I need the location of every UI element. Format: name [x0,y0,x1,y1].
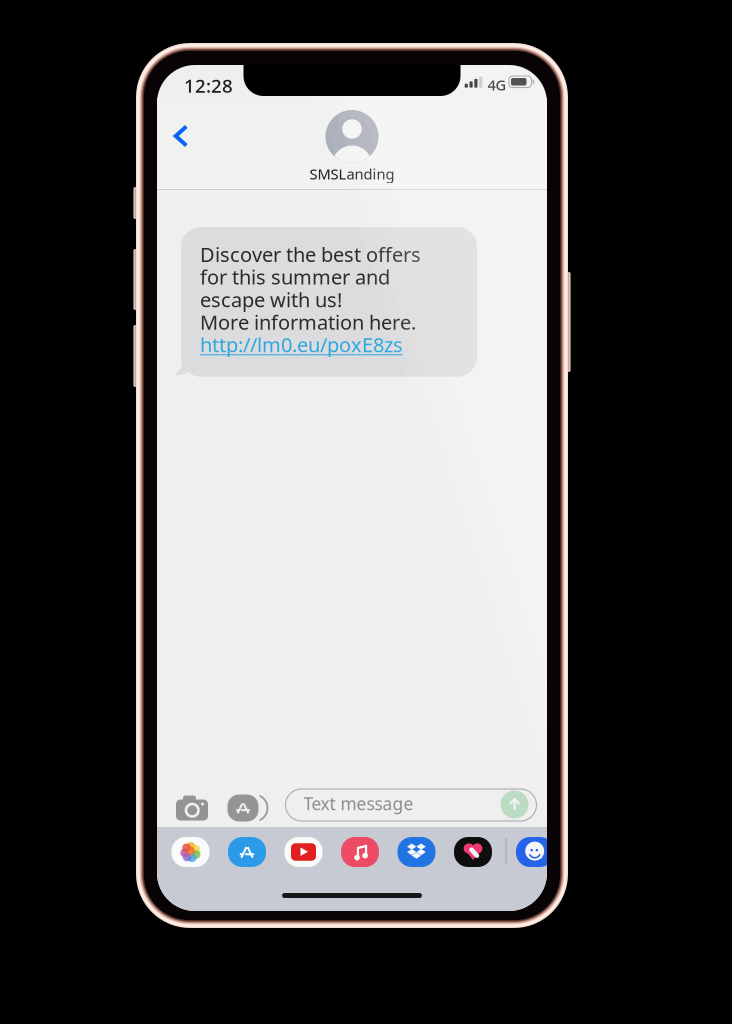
button[interactable]: YouTube [284,837,322,867]
button[interactable]: Music [341,837,379,867]
staticText: 12:28 [184,73,233,98]
staticText: 4G [487,75,506,94]
button[interactable]: Send [498,788,530,820]
staticText: escape with us! [200,286,342,313]
staticText: for this summer and [200,264,390,290]
button[interactable]: Health [454,837,492,867]
staticText: Text message [303,792,413,815]
button[interactable]: Photos [171,837,209,867]
staticText: SMSLanding [309,164,394,183]
button[interactable]: App Store [228,837,266,867]
staticText: More information here. [200,309,416,335]
staticText: http://lm0.eu/poxE8zs [200,331,403,358]
staticText: Discover the best offers [200,241,421,268]
button[interactable]: Messages [516,837,554,867]
button[interactable]: Back [159,112,203,160]
button[interactable]: Camera [172,789,212,827]
button[interactable]: Apps [223,789,267,827]
button[interactable]: Dropbox [397,837,435,867]
button[interactable]: SMSLanding [267,110,437,183]
